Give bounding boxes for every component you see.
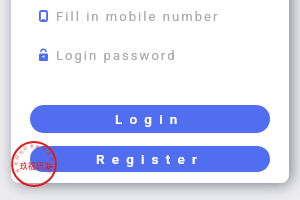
staticText: Register xyxy=(96,151,204,167)
button[interactable]: Fill in mobile number xyxy=(39,4,220,28)
staticText: Login xyxy=(115,111,185,127)
staticText: Login password xyxy=(56,48,177,63)
button[interactable]: Register xyxy=(30,146,270,172)
button[interactable]: Login password xyxy=(39,43,177,67)
staticText: Fill in mobile number xyxy=(56,9,220,24)
button[interactable]: Login xyxy=(30,105,270,133)
